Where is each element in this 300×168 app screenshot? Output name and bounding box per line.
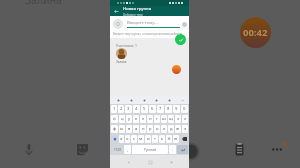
staticText: д (170, 126, 173, 132)
staticText: н (149, 116, 152, 122)
staticText: Русский (144, 148, 157, 152)
button[interactable]: 9 (173, 105, 180, 113)
button[interactable]: щ (168, 115, 174, 123)
button[interactable]: Toolbar item 3 (155, 99, 158, 102)
staticText: 4 (135, 106, 138, 112)
button[interactable]: р (147, 125, 153, 133)
staticText: 0 (183, 106, 186, 112)
button[interactable]: я (119, 135, 124, 143)
staticText: й (113, 116, 116, 122)
button[interactable]: 7 (157, 105, 164, 113)
button[interactable]: 4 (133, 105, 140, 113)
button[interactable]: , (124, 145, 131, 154)
button[interactable]: ь (159, 135, 165, 143)
button[interactable]: е (140, 115, 146, 123)
button[interactable]: й (111, 115, 118, 123)
staticText: 7 (159, 106, 162, 112)
button[interactable]: к (133, 115, 139, 123)
button[interactable]: Clipboard (235, 143, 244, 156)
button[interactable]: с (131, 135, 137, 143)
button[interactable]: 2 (118, 105, 124, 113)
button[interactable]: 5 (141, 105, 148, 113)
button[interactable]: Microphone (25, 143, 33, 156)
button[interactable]: Group icon (113, 19, 123, 29)
button[interactable]: ф (111, 125, 118, 133)
button[interactable]: Enter (177, 145, 188, 154)
button[interactable]: х (182, 115, 188, 123)
button[interactable]: Next (175, 34, 186, 45)
button[interactable]: Expand toolbar (181, 99, 184, 102)
staticText: Введите тему группы, а также при желании… (113, 32, 186, 36)
staticText: ц (121, 116, 124, 122)
staticText: Участники: 1 (116, 43, 137, 48)
staticText: е (142, 116, 145, 122)
button[interactable]: ш (161, 115, 167, 123)
button[interactable]: о (154, 125, 160, 133)
staticText: л (163, 126, 166, 132)
button[interactable]: Back (124, 158, 132, 166)
button[interactable]: Emoji (182, 22, 187, 27)
staticText: ю (174, 136, 178, 142)
button[interactable]: б (166, 135, 172, 143)
button[interactable]: п (140, 125, 146, 133)
button[interactable]: Toolbar item 0 (117, 99, 120, 102)
staticText: к (135, 116, 138, 122)
button[interactable]: 6 (149, 105, 156, 113)
staticText: Залина (25, 0, 62, 7)
button[interactable]: з (175, 115, 181, 123)
staticText: 6 (151, 106, 154, 112)
button[interactable]: Back (110, 6, 123, 16)
button[interactable]: ?123 (111, 145, 123, 154)
button[interactable]: 1 (111, 105, 117, 113)
button[interactable]: г (154, 115, 160, 123)
button[interactable]: ж (175, 125, 181, 133)
button[interactable]: ч (125, 135, 130, 143)
button[interactable]: Backspace (180, 135, 188, 143)
button[interactable]: More options (271, 142, 287, 154)
button[interactable]: Recents (167, 158, 175, 166)
button[interactable]: Sticker (76, 143, 89, 156)
button[interactable]: Shift (111, 135, 118, 143)
button[interactable]: Recording timer (240, 17, 271, 48)
staticText: з (177, 116, 180, 122)
button[interactable]: Toolbar item 2 (143, 99, 146, 102)
button[interactable]: ы (119, 125, 125, 133)
button[interactable]: и (145, 135, 151, 143)
button[interactable]: 0 (181, 105, 188, 113)
staticText: и (147, 136, 150, 142)
button[interactable]: а (133, 125, 139, 133)
staticText: ь (161, 136, 164, 142)
staticText: 1 (113, 106, 116, 112)
button[interactable]: д (168, 125, 174, 133)
button[interactable]: Toolbar item 4 (168, 99, 171, 102)
staticText: б (168, 136, 171, 142)
staticText: в (128, 126, 131, 132)
staticText: 5 (143, 106, 146, 112)
staticText: 00:42 (243, 26, 268, 39)
button[interactable]: Русский (132, 145, 168, 154)
staticText: . (172, 147, 174, 152)
staticText: т (154, 136, 156, 142)
staticText: х (184, 116, 187, 122)
button[interactable]: Stop recording (181, 142, 200, 161)
button[interactable]: Home (146, 158, 154, 166)
button[interactable]: 8 (165, 105, 172, 113)
button[interactable]: н (147, 115, 153, 123)
button[interactable]: т (152, 135, 158, 143)
button[interactable]: э (182, 125, 188, 133)
button[interactable]: . (169, 145, 176, 154)
button[interactable]: у (126, 115, 132, 123)
button[interactable]: Toolbar item 1 (130, 99, 133, 102)
staticText: м (139, 136, 143, 142)
staticText: 8 (167, 106, 170, 112)
button[interactable]: в (126, 125, 132, 133)
button[interactable]: м (138, 135, 144, 143)
staticText: Залина (116, 60, 127, 64)
button[interactable]: ю (173, 135, 179, 143)
staticText: Новая группа (123, 6, 152, 12)
staticText: э (184, 126, 187, 132)
staticText: а (135, 126, 138, 132)
button[interactable]: ц (119, 115, 125, 123)
button[interactable]: л (161, 125, 167, 133)
button[interactable]: 3 (125, 105, 132, 113)
